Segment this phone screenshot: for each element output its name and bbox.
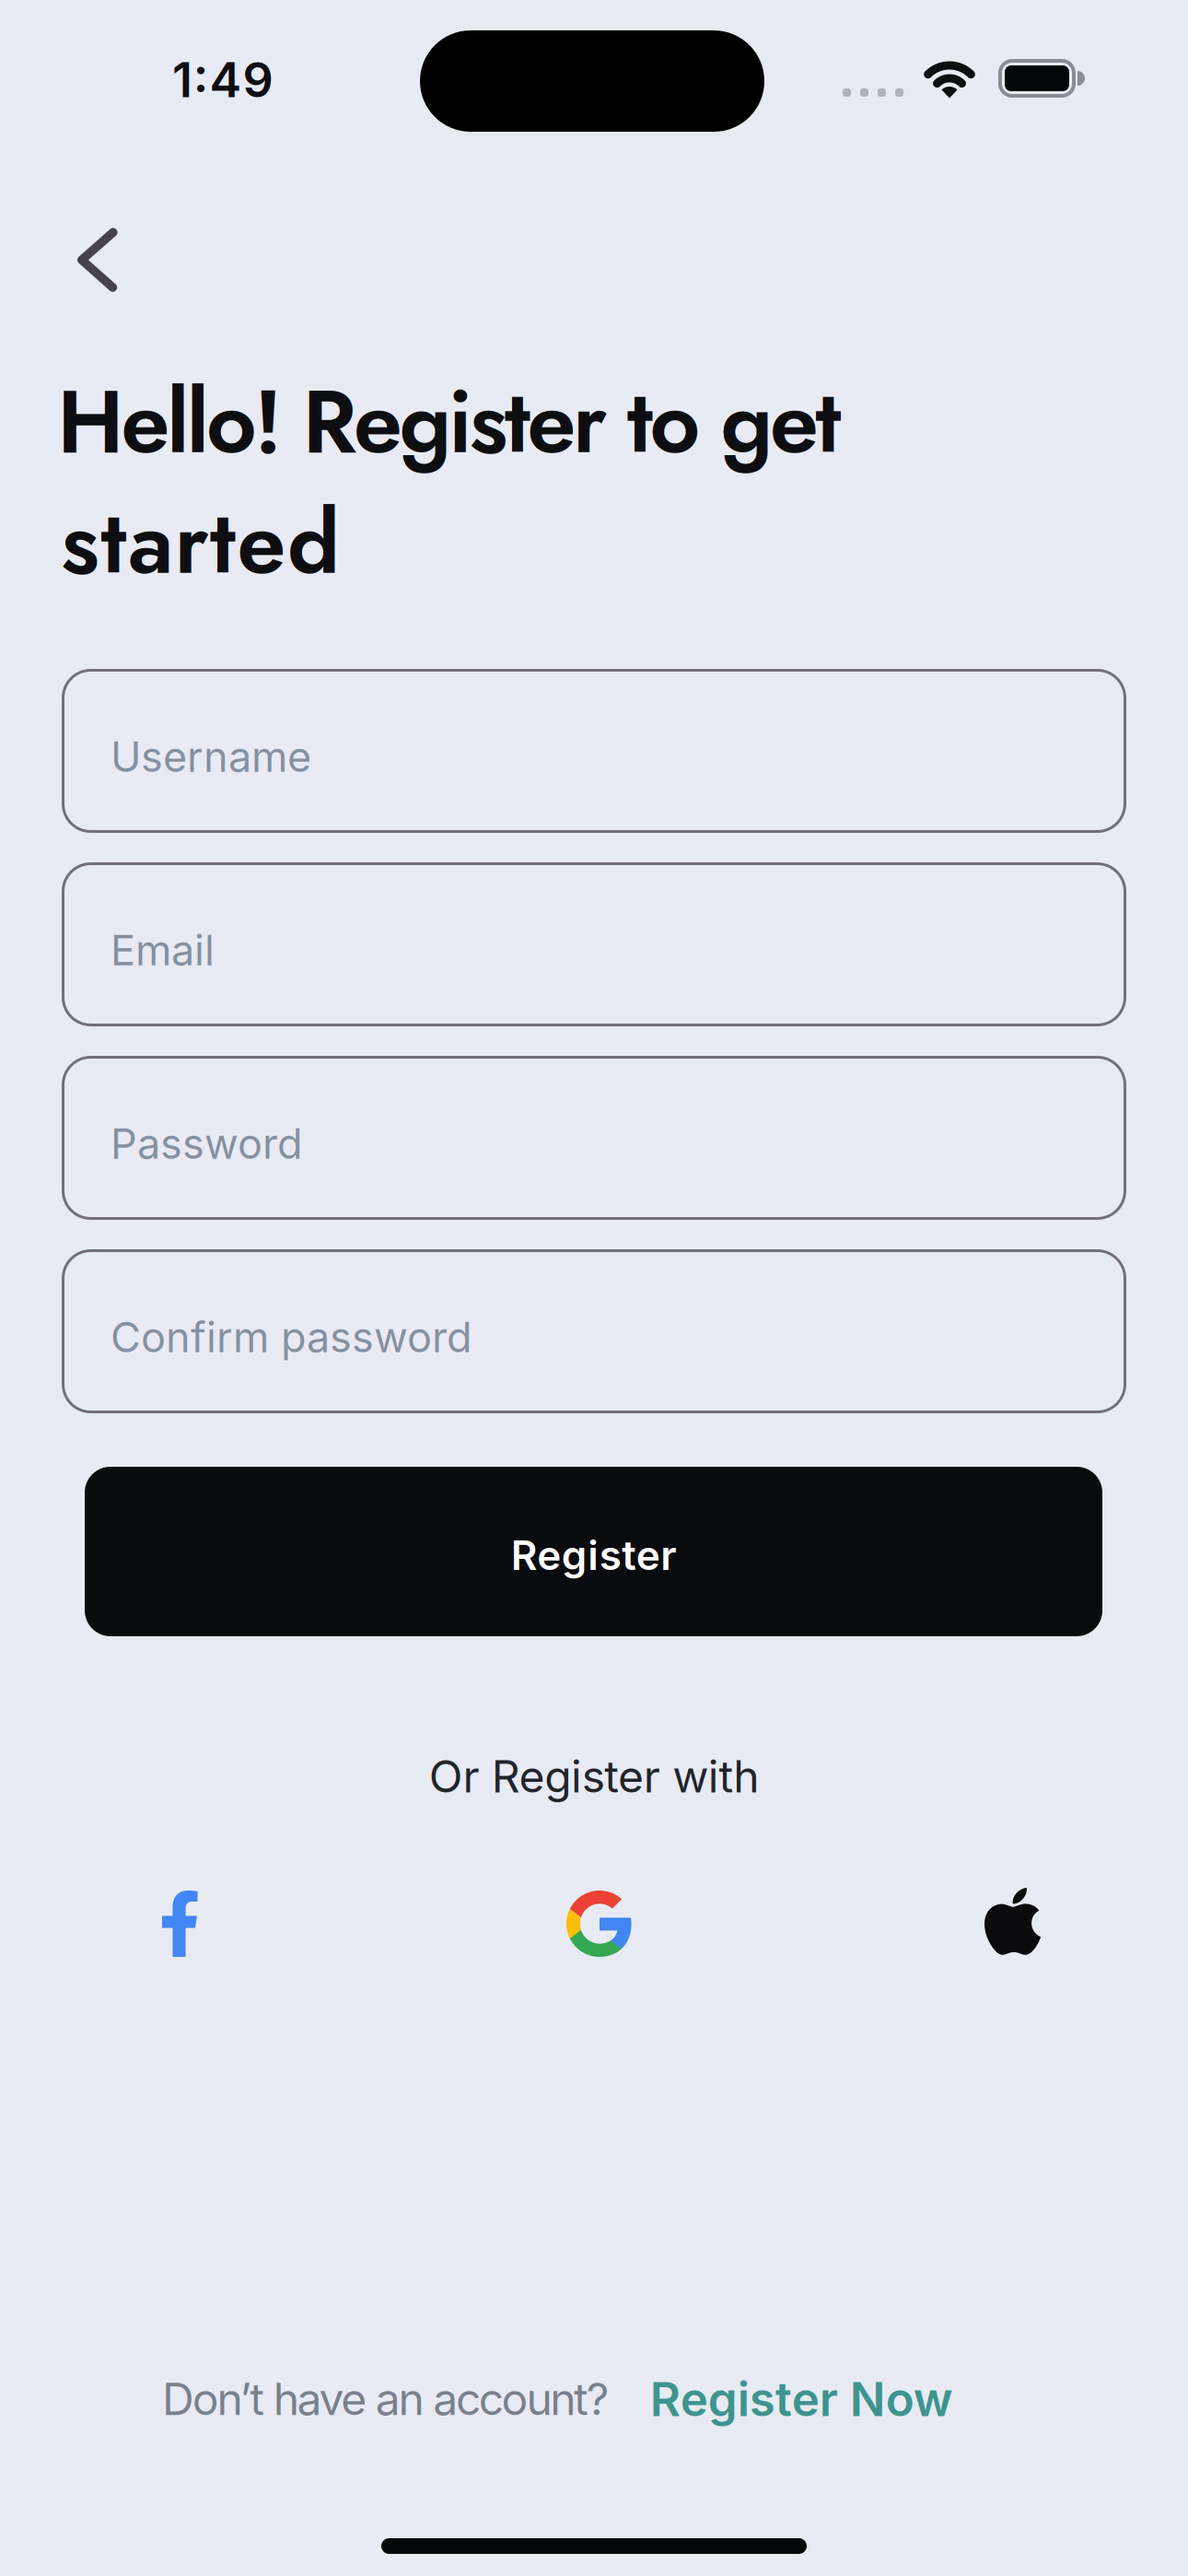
staticText: Password: [111, 1119, 303, 1169]
button[interactable]: Register with Facebook: [162, 1891, 198, 1957]
staticText: Register Now: [650, 2371, 953, 2427]
button[interactable]: Register with Google: [566, 1891, 633, 1957]
staticText: Email: [111, 925, 215, 975]
button[interactable]: Register Now: [650, 2371, 953, 2427]
staticText: Hello! Register to get: [57, 358, 841, 485]
staticText: Register: [511, 1531, 676, 1580]
staticText: 1:49: [172, 51, 273, 109]
staticText: Or Register with: [429, 1750, 759, 1803]
staticText: started: [61, 479, 340, 606]
staticText: Don’t have an account?: [162, 2372, 609, 2426]
button[interactable]: Register with Apple: [984, 1888, 1042, 1959]
staticText: Username: [111, 732, 311, 782]
staticText: Confirm password: [111, 1312, 472, 1362]
button[interactable]: Back: [77, 227, 118, 294]
button[interactable]: Register: [85, 1467, 1102, 1636]
